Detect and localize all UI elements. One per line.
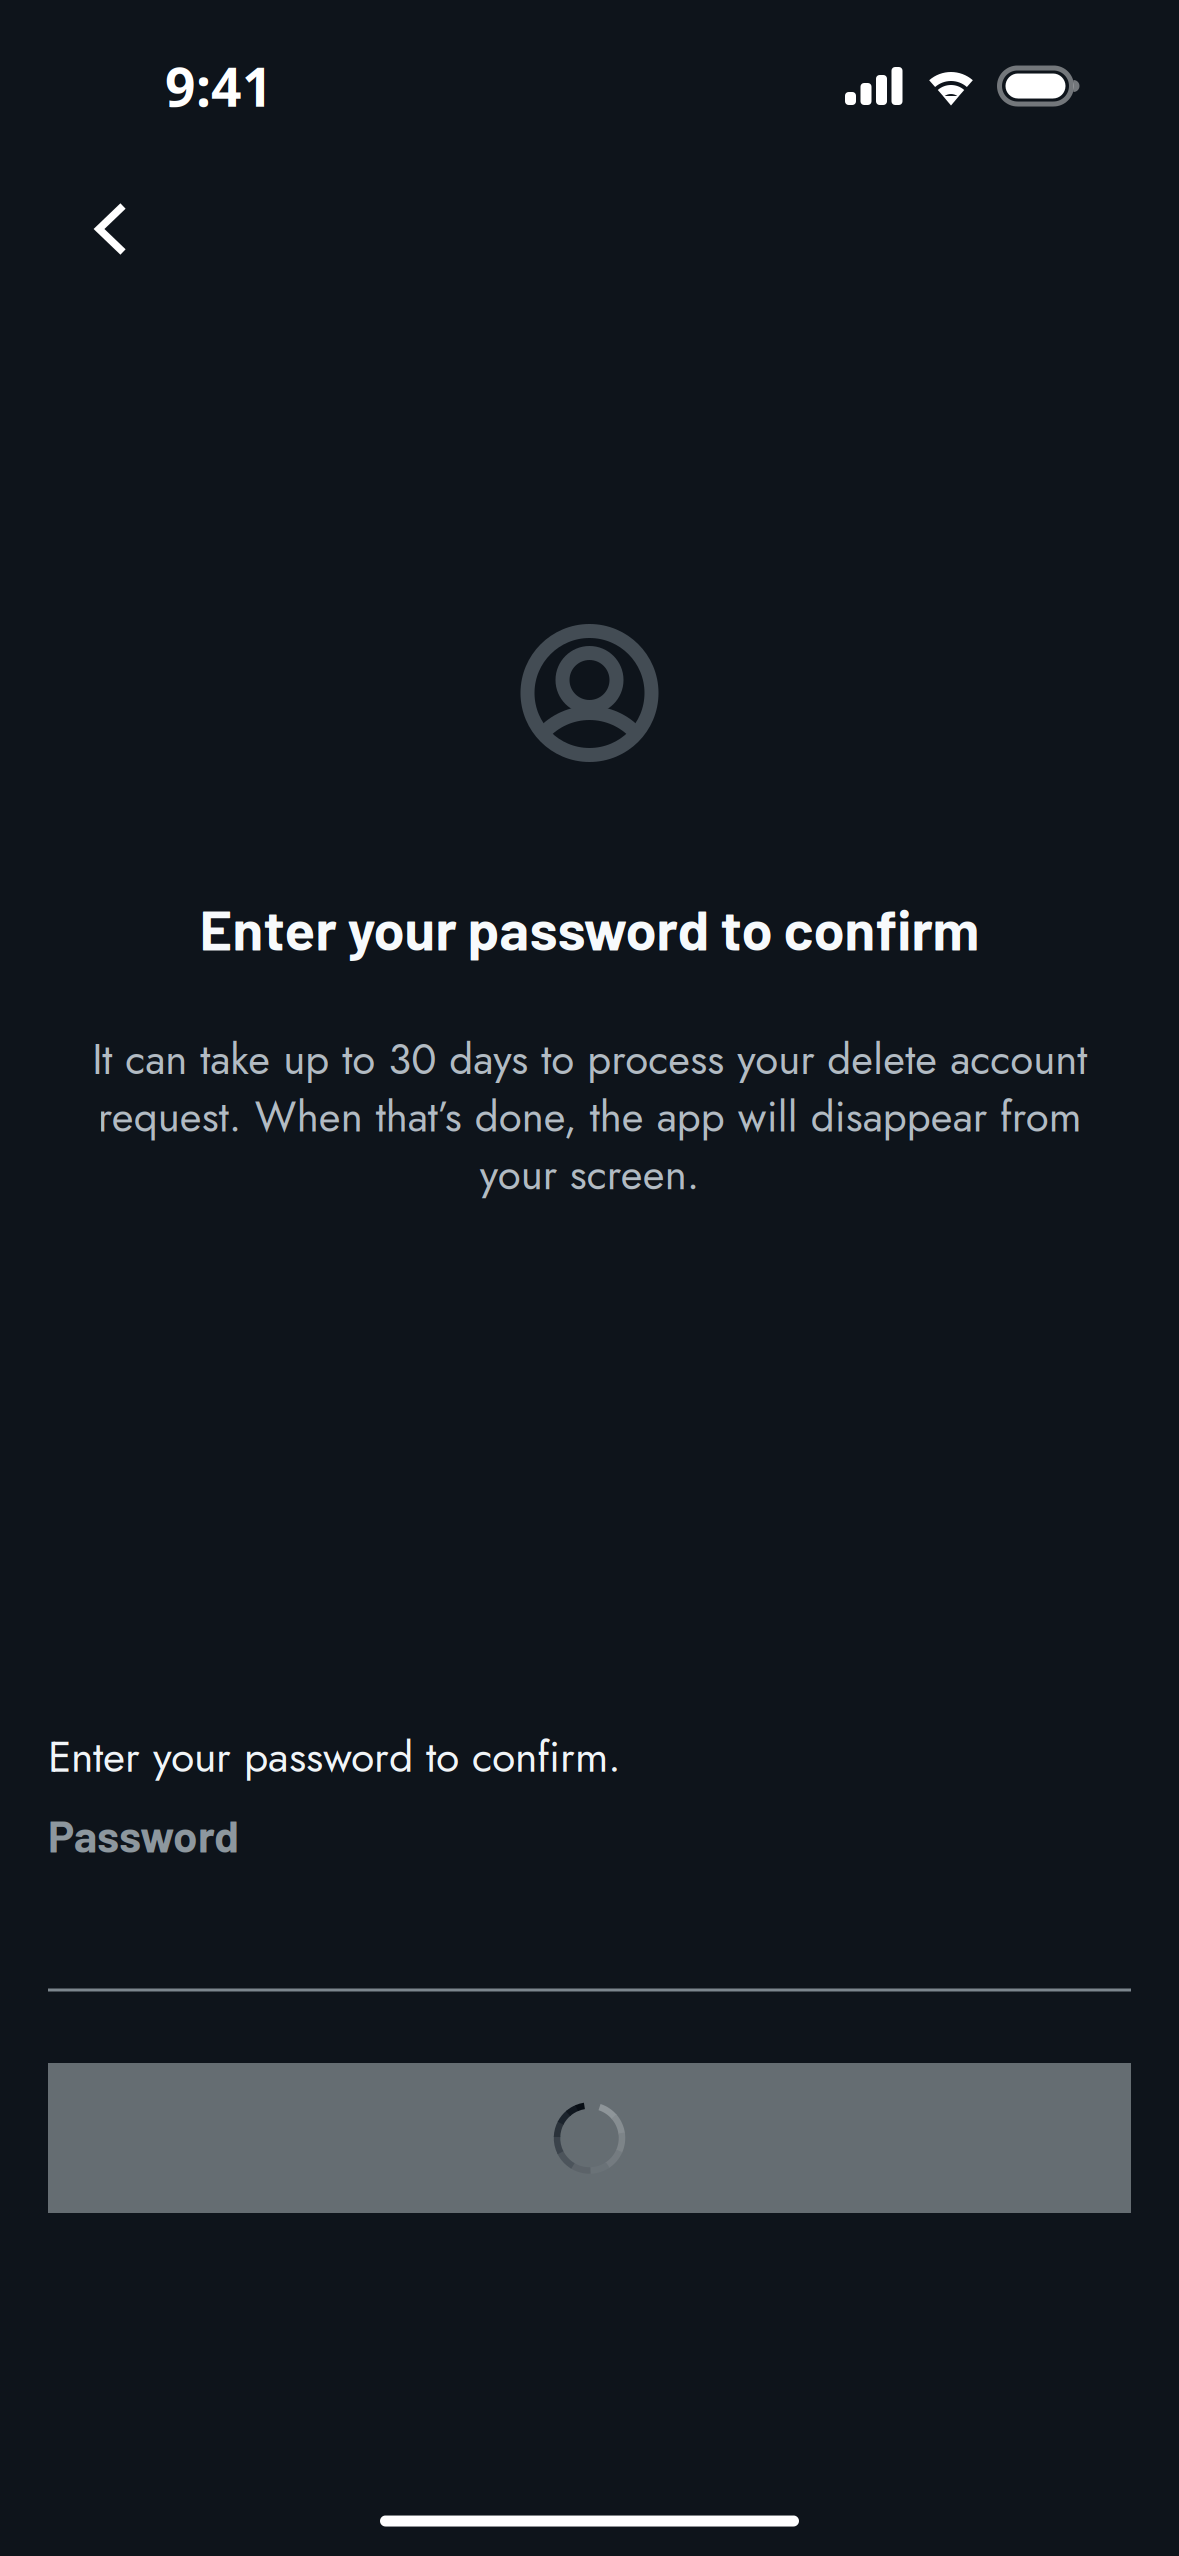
staticText: Enter your password to confirm. <box>48 1726 621 1788</box>
staticText: Password <box>48 1809 239 1861</box>
staticText: 9:41 <box>165 50 273 122</box>
staticText: It can take up to 30 days to process you… <box>92 1029 1087 1205</box>
button[interactable]: Back <box>48 177 188 281</box>
button[interactable]: Confirm <box>48 2063 1131 2213</box>
staticText: Enter your password to confirm <box>199 894 979 962</box>
